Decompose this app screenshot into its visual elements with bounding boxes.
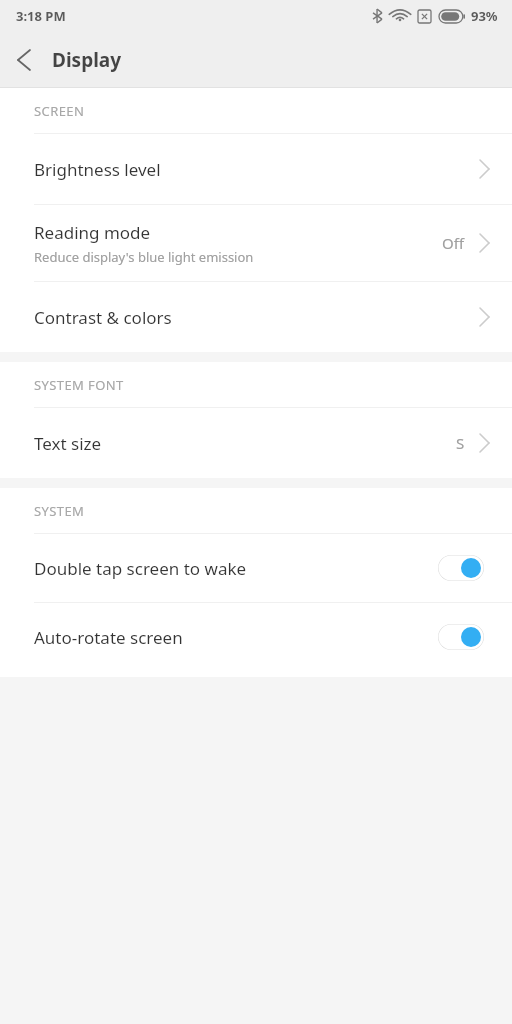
staticText: Contrast & colors <box>34 306 172 329</box>
button[interactable]: Contrast & colors <box>0 282 512 352</box>
staticText: SYSTEM FONT <box>34 376 124 394</box>
button[interactable]: Toggle on <box>438 555 484 581</box>
button[interactable]: Text size <box>0 408 512 478</box>
staticText: Double tap screen to wake <box>34 557 438 580</box>
staticText: 93% <box>471 7 498 25</box>
button[interactable]: Double tap screen to wake <box>0 534 512 602</box>
button[interactable]: Back <box>0 36 48 84</box>
staticText: S <box>456 433 465 453</box>
button[interactable]: Reading mode <box>0 205 512 281</box>
staticText: SCREEN <box>34 102 85 120</box>
staticText: Off <box>442 233 465 253</box>
staticText: Text size <box>34 432 102 455</box>
button[interactable]: Toggle on <box>438 624 484 650</box>
staticText: Display <box>52 47 122 73</box>
staticText: Reading mode <box>34 221 151 244</box>
staticText: Reduce display's blue light emission <box>34 248 254 266</box>
staticText: SYSTEM <box>34 502 85 520</box>
staticText: Auto-rotate screen <box>34 626 438 649</box>
button[interactable]: Auto-rotate screen <box>0 603 512 671</box>
staticText: Brightness level <box>34 158 161 181</box>
staticText: 3:18 PM <box>16 7 66 25</box>
button[interactable]: Brightness level <box>0 134 512 204</box>
